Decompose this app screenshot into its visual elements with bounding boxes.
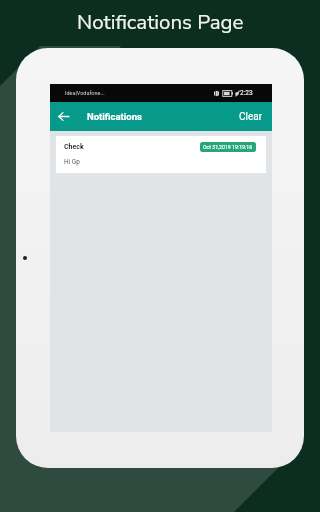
- staticText: Hi Gp: [64, 158, 80, 166]
- staticText: 2:23: [240, 89, 253, 97]
- button[interactable]: Clear: [230, 107, 272, 127]
- button[interactable]: Back: [55, 108, 72, 125]
- button[interactable]: Check: [56, 136, 266, 173]
- staticText: Notifications Page: [77, 8, 244, 36]
- staticText: Check: [64, 143, 84, 151]
- staticText: Clear: [239, 111, 263, 123]
- staticText: Idea|Vodafone...: [65, 90, 105, 96]
- staticText: Oct 31,2019 19:19:16: [203, 144, 253, 150]
- staticText: Notifications: [87, 111, 142, 122]
